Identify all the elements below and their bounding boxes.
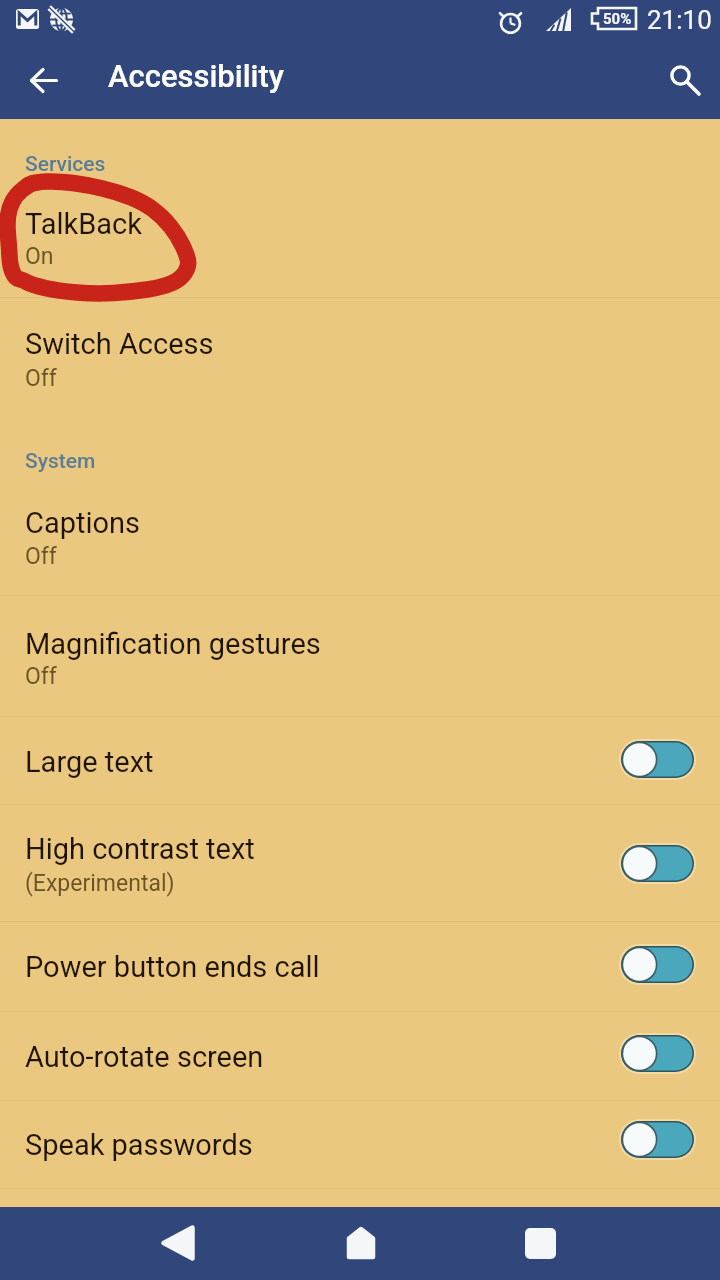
button[interactable]: Toggle [618,1117,694,1159]
button[interactable] [0,1012,720,1100]
button[interactable] [0,190,720,297]
staticText: Off [25,663,57,690]
staticText: 50% [603,10,632,28]
staticText: TalkBack [25,207,142,241]
button[interactable]: Navigate up [15,52,71,108]
button[interactable]: Toggle [618,942,694,984]
button[interactable]: Recent apps [511,1212,569,1274]
staticText: Large text [25,745,154,779]
button[interactable] [0,805,720,921]
staticText: 21:10 [647,5,712,35]
button[interactable]: Back [149,1212,207,1274]
staticText: High contrast text [25,832,255,866]
button[interactable] [0,298,720,419]
staticText: Auto-rotate screen [25,1040,264,1074]
button[interactable] [0,1101,720,1188]
staticText: Speak passwords [25,1128,253,1162]
staticText: Services [25,152,106,177]
staticText: System [25,449,96,474]
button[interactable]: Search [654,50,710,106]
button[interactable] [0,717,720,804]
staticText: Captions [25,506,140,540]
staticText: Accessibility [108,58,284,94]
staticText: Magnification gestures [25,627,321,661]
button[interactable]: Toggle [618,841,694,883]
staticText: Power button ends call [25,950,320,984]
button[interactable]: Toggle [618,737,694,779]
staticText: On [25,243,54,270]
button[interactable]: Toggle [618,1031,694,1073]
button[interactable]: Home [332,1212,390,1274]
staticText: Off [25,543,57,570]
staticText: (Experimental) [25,870,175,897]
button[interactable] [0,596,720,716]
button[interactable] [0,922,720,1011]
staticText: Switch Access [25,327,214,361]
button[interactable] [0,512,720,595]
staticText: Off [25,365,57,392]
